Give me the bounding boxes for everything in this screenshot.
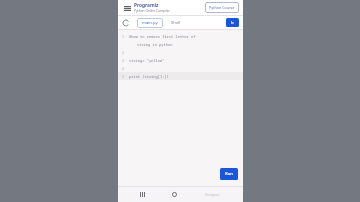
- staticText: #how to remove first letter of: [129, 34, 196, 39]
- staticText: print (string[1:]): [129, 74, 169, 79]
- button[interactable]: Menu: [122, 3, 132, 13]
- staticText: 4: [122, 66, 124, 71]
- staticText: 1: [122, 34, 124, 39]
- staticText: main.py: [142, 20, 158, 26]
- staticText: Python Online Compiler: [134, 9, 170, 13]
- button[interactable]: Back: [199, 187, 225, 202]
- staticText: b: [231, 20, 234, 26]
- staticText: string= "yellow": [129, 58, 165, 63]
- staticText: Programiz: [134, 2, 159, 9]
- staticText: Shell: [171, 20, 181, 26]
- button[interactable]: Reset code: [122, 19, 130, 27]
- staticText: 5: [122, 74, 124, 79]
- staticText: Run: [225, 171, 233, 177]
- staticText: 3: [122, 58, 124, 63]
- button[interactable]: Shell: [169, 18, 183, 28]
- staticText: string in python: [137, 42, 173, 47]
- button[interactable]: Home: [168, 188, 181, 201]
- staticText: 2: [122, 50, 124, 55]
- staticText: Python Course: [209, 5, 235, 10]
- button[interactable]: Share: [226, 18, 239, 27]
- button[interactable]: Recent apps: [136, 188, 149, 201]
- button[interactable]: main.py: [137, 18, 163, 28]
- staticText: Designer: [205, 192, 220, 197]
- button[interactable]: Python Course: [205, 2, 239, 13]
- button[interactable]: Run: [220, 168, 238, 180]
